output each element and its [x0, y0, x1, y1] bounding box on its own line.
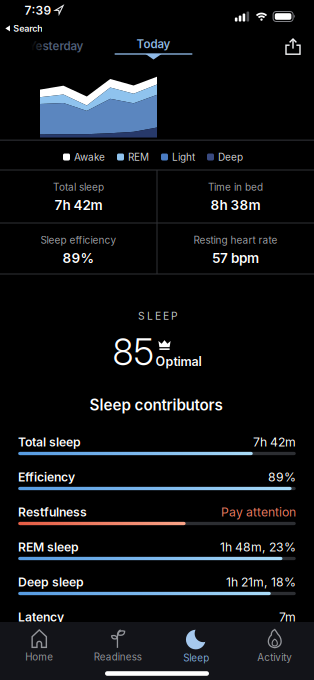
staticText: Deep sleep	[18, 575, 84, 589]
staticText: 7h 42m	[54, 197, 102, 213]
staticText: 7m	[279, 610, 296, 624]
staticText: 7h 42m	[253, 435, 296, 449]
staticText: Today	[136, 37, 170, 51]
button[interactable]: Activity	[235, 624, 314, 668]
button[interactable]: Efficiency	[0, 469, 314, 504]
staticText: Sleep	[183, 652, 209, 664]
staticText: 8h 38m	[210, 197, 260, 213]
button[interactable]: Home	[0, 624, 78, 668]
staticText: 85	[112, 330, 153, 374]
button[interactable]: Restfulness	[0, 504, 314, 539]
staticText: Activity	[257, 652, 292, 663]
staticText: Resting heart rate	[193, 234, 277, 246]
staticText: 89%	[268, 470, 296, 484]
staticText: Sleep efficiency	[40, 234, 116, 246]
button[interactable]: Today	[114, 33, 192, 61]
staticText: 1h 48m, 23%	[220, 540, 296, 554]
staticText: 7:39	[24, 3, 51, 18]
staticText: Awake	[74, 151, 105, 163]
button[interactable]: Readiness	[78, 624, 157, 668]
staticText: Optimal	[155, 354, 201, 369]
button[interactable]: Latency	[0, 609, 314, 644]
button[interactable]: Total sleep	[0, 434, 314, 469]
staticText: Pay attention	[221, 505, 296, 519]
staticText: 57 bpm	[212, 250, 259, 266]
staticText: Home	[25, 651, 53, 663]
staticText: Efficiency	[18, 470, 75, 484]
staticText: Readiness	[94, 651, 142, 663]
staticText: SLEEP	[138, 310, 178, 322]
staticText: Search	[13, 23, 43, 34]
button[interactable]: REM sleep	[0, 539, 314, 574]
button[interactable]: Deep sleep	[0, 574, 314, 609]
staticText: Total sleep	[18, 435, 81, 449]
staticText: 1h 21m, 18%	[226, 575, 296, 589]
staticText: Restfulness	[18, 505, 87, 519]
staticText: Light	[172, 151, 195, 163]
staticText: Yesterday	[28, 39, 83, 53]
staticText: Deep	[218, 151, 243, 163]
staticText: REM sleep	[18, 540, 79, 554]
staticText: 89%	[62, 250, 94, 266]
button[interactable]: Yesterday	[11, 36, 101, 56]
button[interactable]: Share	[278, 32, 308, 60]
staticText: Sleep contributors	[89, 396, 222, 414]
staticText: Total sleep	[53, 181, 104, 193]
button[interactable]: Sleep	[157, 624, 235, 668]
staticText: Time in bed	[208, 181, 263, 193]
staticText: REM	[128, 151, 149, 163]
staticText: Latency	[18, 610, 64, 624]
